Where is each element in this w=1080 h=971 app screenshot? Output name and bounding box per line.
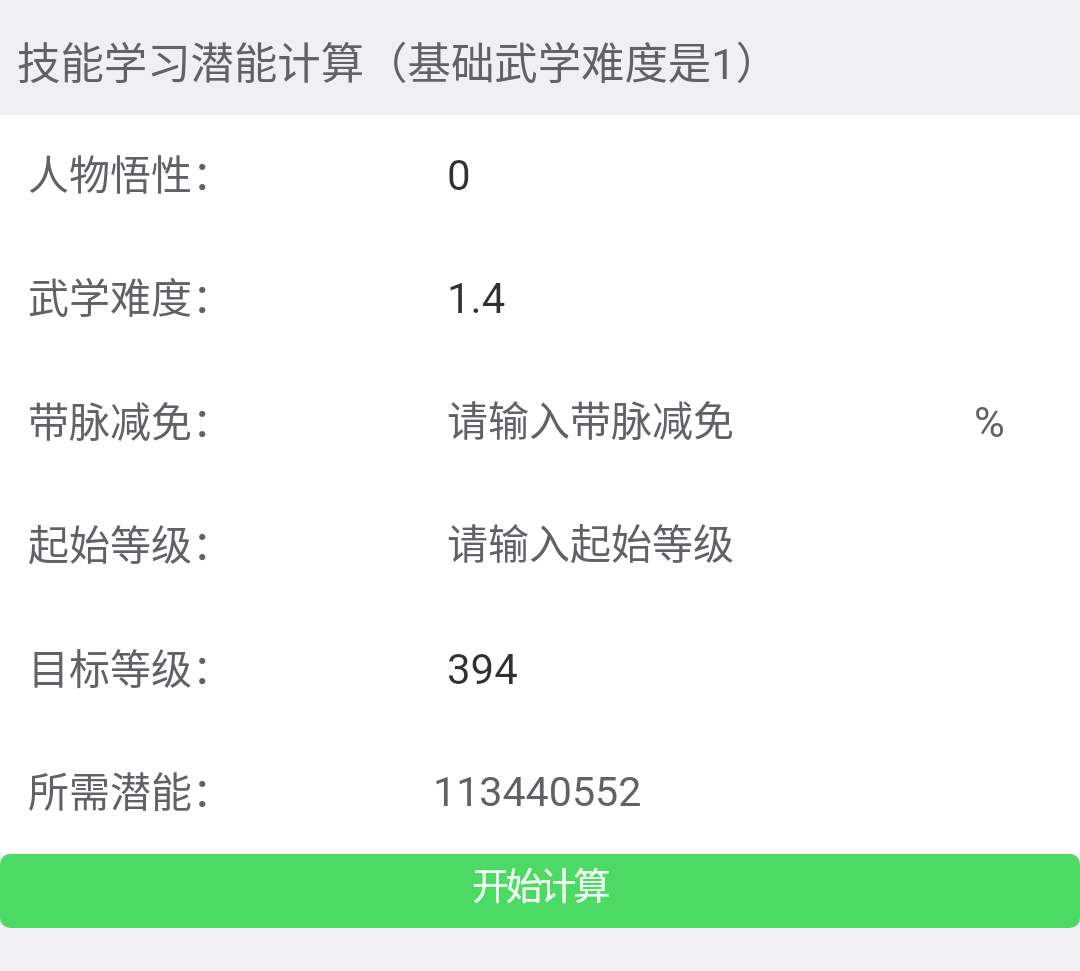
staticText: 394 bbox=[447, 645, 518, 694]
staticText: 1.4 bbox=[447, 274, 506, 323]
other: 页面标题 bbox=[0, 0, 1080, 115]
staticText: 0 bbox=[447, 151, 471, 200]
button[interactable]: 所需潜能： bbox=[0, 726, 1080, 850]
staticText: 所需潜能： bbox=[28, 759, 233, 818]
staticText: 武学难度： bbox=[28, 265, 233, 324]
staticText: 目标等级： bbox=[28, 636, 233, 695]
staticText: 带脉减免： bbox=[28, 389, 233, 448]
staticText: % bbox=[974, 398, 1005, 447]
button[interactable]: 人物悟性： bbox=[0, 109, 1080, 233]
button[interactable]: 目标等级： bbox=[0, 603, 1080, 727]
button[interactable]: 带脉减免： bbox=[0, 356, 1080, 480]
staticText: 请输入带脉减免 bbox=[447, 388, 734, 447]
staticText: 开始计算 bbox=[472, 857, 608, 911]
button[interactable]: 起始等级： bbox=[0, 479, 1080, 603]
staticText: 起始等级： bbox=[28, 512, 233, 571]
staticText: 人物悟性： bbox=[28, 142, 233, 201]
staticText: 113440552 bbox=[433, 768, 642, 816]
staticText: 技能学习潜能计算（基础武学难度是1） bbox=[17, 29, 780, 92]
staticText: 请输入起始等级 bbox=[447, 511, 734, 570]
button[interactable]: 开始计算 bbox=[0, 854, 1080, 928]
button[interactable]: 武学难度： bbox=[0, 232, 1080, 356]
